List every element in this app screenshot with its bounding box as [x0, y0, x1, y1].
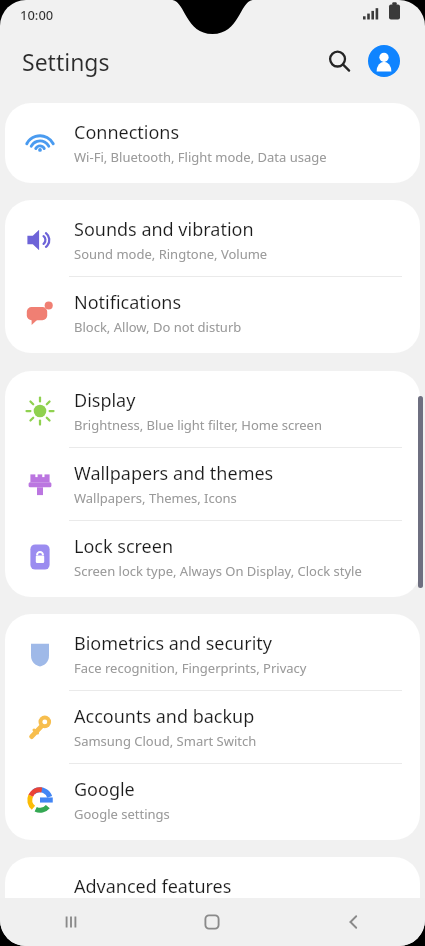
staticText: Face recognition, Fingerprints, Privacy [74, 659, 307, 677]
staticText: Google settings [74, 805, 170, 823]
staticText: Samsung Cloud, Smart Switch [74, 732, 257, 750]
staticText: Sounds and vibration [74, 217, 254, 242]
button[interactable]: Connections [5, 107, 420, 179]
staticText: Brightness, Blue light filter, Home scre… [74, 416, 322, 434]
staticText: Sound mode, Ringtone, Volume [74, 245, 268, 263]
staticText: Connections [74, 120, 180, 145]
button[interactable]: Biometrics and security [5, 618, 420, 690]
staticText: Notifications [74, 290, 182, 315]
staticText: Google [74, 777, 135, 802]
staticText: Block, Allow, Do not disturb [74, 318, 242, 336]
staticText: Wallpapers and themes [74, 461, 274, 486]
button[interactable]: Lock screen [5, 521, 420, 593]
staticText: Settings [22, 46, 110, 77]
staticText: Screen lock type, Always On Display, Clo… [74, 562, 362, 580]
staticText: Lock screen [74, 534, 174, 559]
staticText: Accounts and backup [74, 704, 255, 729]
staticText: Labs, Bixby Routines [74, 902, 200, 920]
staticText: 10:00 [20, 6, 54, 24]
button[interactable]: Home [141, 898, 283, 946]
button[interactable]: Google [5, 764, 420, 836]
button[interactable]: Sounds and vibration [5, 204, 420, 276]
button[interactable]: Search [318, 40, 360, 82]
button[interactable]: Wallpapers and themes [5, 448, 420, 520]
staticText: Advanced features [74, 874, 232, 899]
staticText: Wi-Fi, Bluetooth, Flight mode, Data usag… [74, 148, 327, 166]
staticText: Display [74, 388, 136, 413]
button[interactable]: Display [5, 375, 420, 447]
button[interactable]: Back [283, 898, 425, 946]
button[interactable]: Recents [0, 898, 141, 946]
button[interactable]: Advanced features [5, 861, 420, 933]
button[interactable]: Notifications [5, 277, 420, 349]
button[interactable]: Account [363, 40, 405, 82]
staticText: Biometrics and security [74, 631, 272, 656]
staticText: Wallpapers, Themes, Icons [74, 489, 237, 507]
button[interactable]: Accounts and backup [5, 691, 420, 763]
